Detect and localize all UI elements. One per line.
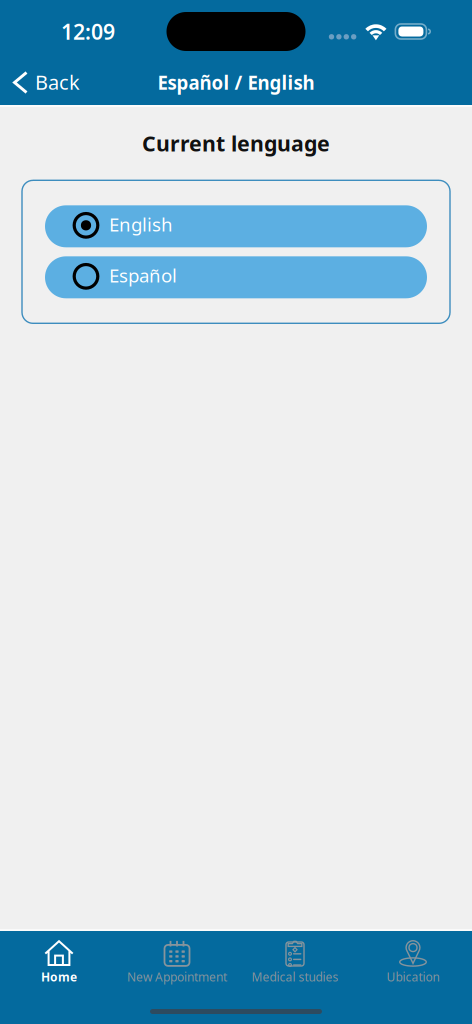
button[interactable]: English [45,205,427,247]
staticText: Current lenguage [142,129,330,157]
staticText: New Appointment [127,969,227,985]
button[interactable]: Medical studies [236,940,354,985]
staticText: Español / English [157,70,314,95]
staticText: English [109,212,173,237]
staticText: Ubication [386,969,439,985]
staticText: 12:09 [61,17,115,46]
staticText: Home [41,969,77,985]
button[interactable]: New Appointment [118,940,236,985]
staticText: Español [109,263,177,288]
button[interactable]: Ubication [354,940,472,985]
button[interactable]: Back [0,58,80,103]
staticText: Back [35,69,80,95]
button[interactable]: Home [0,940,118,985]
button[interactable]: Español [45,256,427,298]
staticText: Medical studies [251,969,338,985]
